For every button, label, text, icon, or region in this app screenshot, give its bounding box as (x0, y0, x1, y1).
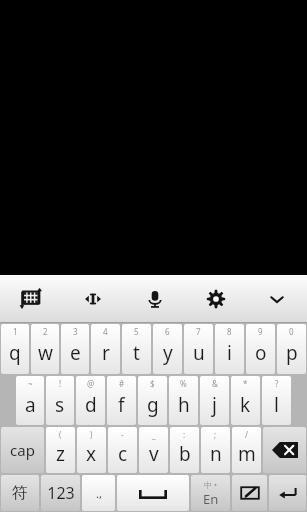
staticText: p (286, 340, 298, 366)
staticText: l (274, 392, 279, 418)
staticText: En (203, 490, 219, 508)
button[interactable]: : (170, 427, 199, 473)
staticText: 7 (196, 326, 201, 337)
staticText: v (149, 441, 159, 467)
staticText: ~ (28, 378, 33, 389)
staticText: 0 (289, 326, 294, 337)
staticText: ., (96, 486, 102, 501)
staticText: * (243, 378, 248, 389)
button[interactable]: ) (77, 427, 106, 473)
button[interactable]: Move cursor (62, 275, 124, 322)
staticText: 符 (12, 483, 28, 503)
button[interactable]: Chinese English toggle (191, 475, 230, 511)
staticText: g (147, 392, 159, 418)
button[interactable]: 2 (31, 324, 59, 374)
button[interactable]: 9 (246, 324, 275, 374)
button[interactable]: ? (262, 376, 291, 425)
staticText: m (238, 441, 256, 467)
button[interactable]: 符 (1, 475, 39, 511)
staticText: n (210, 441, 222, 467)
button[interactable]: @ (76, 376, 105, 425)
button[interactable]: * (231, 376, 260, 425)
staticText: y (163, 340, 173, 366)
staticText: b (179, 441, 191, 467)
staticText: w (38, 340, 53, 366)
staticText: d (85, 392, 97, 418)
staticText: ; (214, 429, 217, 440)
staticText: _ (152, 429, 156, 440)
staticText: : (183, 429, 186, 440)
button[interactable]: # (107, 376, 136, 425)
staticText: 中 • (204, 479, 218, 490)
button[interactable]: Voice input (124, 275, 185, 322)
button[interactable]: / (232, 427, 261, 473)
button[interactable]: ! (46, 376, 74, 425)
button[interactable]: Space (117, 475, 189, 511)
staticText: 6 (165, 326, 170, 337)
staticText: t (133, 340, 140, 366)
button[interactable]: 7 (184, 324, 213, 374)
staticText: cap (10, 440, 35, 460)
staticText: 123 (47, 482, 75, 504)
staticText: ? (275, 378, 279, 389)
button[interactable]: ; (201, 427, 230, 473)
staticText: $ (150, 378, 155, 389)
staticText: c (118, 441, 128, 467)
staticText: f (118, 392, 125, 418)
staticText: 4 (103, 326, 108, 337)
staticText: i (227, 340, 232, 366)
staticText: x (86, 441, 97, 467)
button[interactable]: _ (139, 427, 168, 473)
button[interactable]: ~ (16, 376, 44, 425)
staticText: e (70, 340, 81, 366)
staticText: h (178, 392, 190, 418)
button[interactable]: 0 (277, 324, 306, 374)
staticText: ( (59, 429, 62, 440)
button[interactable]: 4 (91, 324, 120, 374)
button[interactable]: % (169, 376, 198, 425)
button[interactable]: 5 (122, 324, 151, 374)
staticText: / (245, 429, 248, 440)
button[interactable]: 8 (215, 324, 244, 374)
staticText: ) (90, 429, 93, 440)
staticText: 9 (258, 326, 263, 337)
button[interactable]: - (108, 427, 137, 473)
staticText: o (255, 340, 267, 366)
staticText: k (240, 392, 251, 418)
button[interactable]: Backspace (263, 427, 306, 473)
button[interactable]: Enter (269, 475, 306, 511)
staticText: 5 (134, 326, 139, 337)
staticText: % (180, 378, 187, 389)
button[interactable]: 3 (61, 324, 89, 374)
button[interactable]: 6 (153, 324, 182, 374)
button[interactable]: 1 (1, 324, 29, 374)
button[interactable]: $ (138, 376, 167, 425)
staticText: & (212, 378, 218, 389)
staticText: 2 (43, 326, 48, 337)
button[interactable]: & (200, 376, 229, 425)
staticText: z (56, 441, 65, 467)
staticText: s (55, 392, 65, 418)
button[interactable]: Keyboard layout (0, 275, 62, 322)
staticText: a (25, 392, 36, 418)
staticText: u (193, 340, 205, 366)
staticText: # (119, 378, 125, 389)
staticText: 3 (73, 326, 78, 337)
button[interactable]: 123 (41, 475, 80, 511)
button[interactable]: cap (1, 427, 44, 473)
button[interactable]: ( (46, 427, 75, 473)
staticText: 8 (227, 326, 232, 337)
staticText: @ (87, 378, 95, 389)
staticText: 1 (13, 326, 18, 337)
staticText: ! (59, 378, 62, 389)
staticText: q (9, 340, 21, 366)
staticText: j (212, 392, 217, 418)
button[interactable]: Handwriting (232, 475, 267, 511)
button[interactable]: ., (82, 475, 115, 511)
button[interactable]: Settings (185, 275, 246, 322)
staticText: - (121, 429, 124, 440)
staticText: r (102, 340, 110, 366)
button[interactable]: Hide keyboard (246, 275, 307, 322)
